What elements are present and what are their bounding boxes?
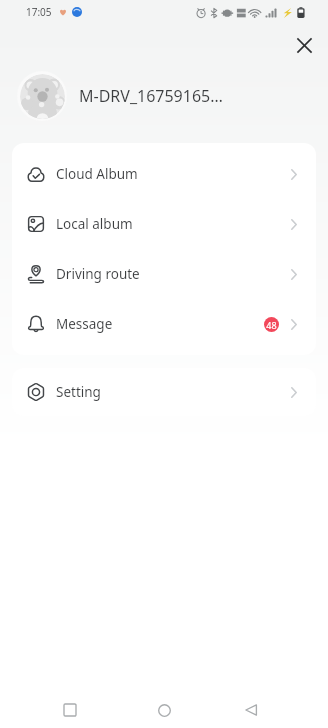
staticText: M-DRV_16759165… bbox=[79, 85, 223, 107]
button[interactable]: Local album bbox=[12, 199, 316, 249]
staticText: Message bbox=[56, 315, 113, 333]
button[interactable]: Close bbox=[287, 28, 321, 62]
button[interactable]: Cloud Album bbox=[12, 149, 316, 199]
staticText: 48 bbox=[266, 319, 277, 331]
staticText: Local album bbox=[56, 215, 133, 233]
staticText: 17:05 bbox=[26, 5, 52, 19]
button[interactable]: M-DRV_16759165… bbox=[0, 69, 328, 143]
staticText: Setting bbox=[56, 383, 101, 401]
button[interactable]: Back bbox=[233, 692, 269, 728]
button[interactable]: Driving route bbox=[12, 249, 316, 299]
staticText: Driving route bbox=[56, 265, 140, 283]
button[interactable]: Setting bbox=[12, 368, 316, 416]
button[interactable]: Recents bbox=[52, 692, 88, 728]
button[interactable]: Home bbox=[146, 692, 182, 728]
staticText: Cloud Album bbox=[56, 165, 138, 183]
button[interactable]: Message bbox=[12, 299, 316, 349]
